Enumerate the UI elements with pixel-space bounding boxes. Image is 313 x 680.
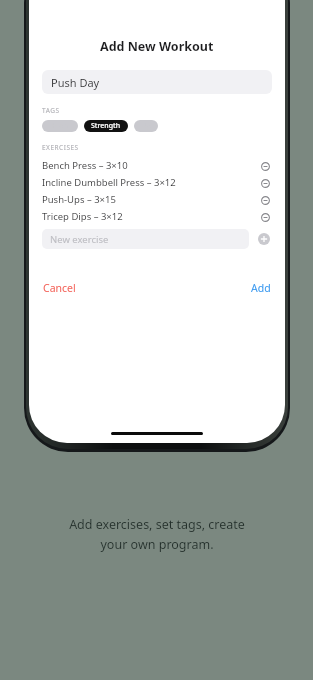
button[interactable]: Remove exercise: [258, 176, 272, 190]
button[interactable]: Add exercise: [256, 231, 272, 247]
staticText: Add: [251, 281, 271, 295]
button[interactable]: Cancel: [42, 279, 77, 297]
button[interactable]: Remove exercise: [258, 159, 272, 173]
button[interactable]: Bench Press – 3×10: [42, 157, 272, 174]
staticText: Incline Dumbbell Press – 3×12: [42, 176, 258, 189]
staticText: New exercise: [50, 233, 109, 246]
button[interactable]: Push Day: [42, 70, 272, 94]
staticText: Add exercises, set tags, create: [69, 516, 245, 533]
staticText: your own program.: [100, 536, 214, 553]
staticText: Bench Press – 3×10: [42, 159, 258, 172]
button[interactable]: Add: [250, 279, 272, 297]
staticText: Cancel: [43, 281, 76, 295]
button[interactable]: Push: [42, 120, 78, 132]
staticText: EXERCISES: [42, 143, 79, 152]
button[interactable]: Remove exercise: [258, 210, 272, 224]
button[interactable]: Tricep Dips – 3×12: [42, 208, 272, 225]
staticText: TAGS: [42, 106, 60, 115]
staticText: Push Day: [51, 75, 100, 90]
button[interactable]: New exercise: [42, 229, 249, 249]
staticText: Strength: [91, 121, 121, 131]
button[interactable]: Up: [134, 120, 158, 132]
button[interactable]: Incline Dumbbell Press – 3×12: [42, 174, 272, 191]
button[interactable]: Remove exercise: [258, 193, 272, 207]
staticText: Add New Workout: [100, 38, 214, 55]
button[interactable]: Push-Ups – 3×15: [42, 191, 272, 208]
staticText: Tricep Dips – 3×12: [42, 210, 258, 223]
button[interactable]: Strength: [84, 120, 128, 132]
staticText: Push-Ups – 3×15: [42, 193, 258, 206]
